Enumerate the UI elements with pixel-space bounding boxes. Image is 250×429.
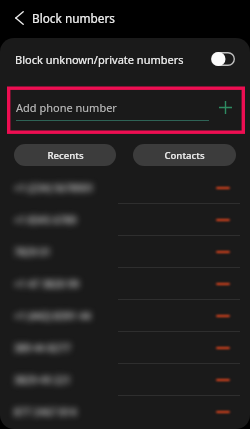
- button[interactable]: 877 2467 814: [0, 396, 250, 428]
- button[interactable]: Navigate up: [0, 1, 32, 35]
- staticText: Recents: [47, 149, 84, 162]
- button[interactable]: +1 (234) 5678901: [0, 172, 250, 204]
- staticText: Block numbers: [32, 10, 115, 26]
- button[interactable]: +1 47 3820 99: [0, 268, 250, 300]
- button[interactable]: Recents: [14, 144, 116, 166]
- button[interactable]: Add number: [214, 96, 236, 118]
- staticText: 3829 49 221: [14, 373, 71, 387]
- staticText: +1 47 3820 99: [14, 277, 79, 291]
- button[interactable]: Remove number: [210, 367, 236, 393]
- staticText: Block unknown/private numbers: [15, 52, 211, 67]
- button[interactable]: Remove number: [210, 175, 236, 201]
- button[interactable]: Remove number: [210, 399, 236, 425]
- button[interactable]: Block unknown/private numbers toggle: [211, 52, 235, 66]
- button[interactable]: Remove number: [210, 303, 236, 329]
- staticText: +1 8345 6789: [14, 213, 77, 227]
- button[interactable]: Remove number: [210, 271, 236, 297]
- button[interactable]: Contacts: [133, 144, 236, 166]
- button[interactable]: 7829 01: [0, 236, 250, 268]
- staticText: Add phone number: [16, 100, 117, 115]
- staticText: +1 (234) 5678901: [14, 181, 94, 195]
- button[interactable]: 389 44 8277: [0, 332, 250, 364]
- button[interactable]: +1 8345 6789: [0, 204, 250, 236]
- staticText: 877 2467 814: [14, 405, 77, 419]
- button[interactable]: Block unknown/private numbers: [0, 38, 250, 80]
- staticText: 7829 01: [14, 245, 51, 259]
- button[interactable]: 3829 49 221: [0, 364, 250, 396]
- staticText: Contacts: [164, 149, 205, 162]
- button[interactable]: Remove number: [210, 239, 236, 265]
- button[interactable]: Remove number: [210, 207, 236, 233]
- button[interactable]: +1 (442) 8391 44: [0, 300, 250, 332]
- button[interactable]: Remove number: [210, 335, 236, 361]
- staticText: +1 (442) 8391 44: [14, 309, 91, 323]
- staticText: 389 44 8277: [14, 341, 71, 355]
